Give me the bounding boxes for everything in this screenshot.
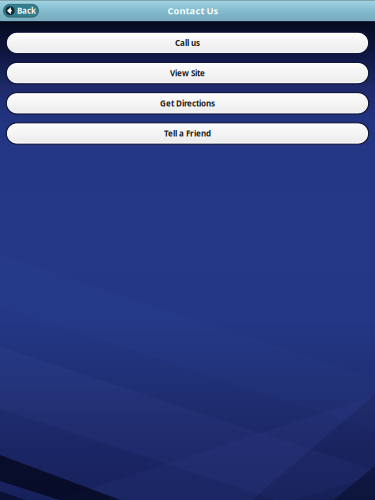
button[interactable]: View Site [6, 62, 369, 84]
staticText: View Site [170, 68, 205, 78]
button[interactable]: Tell a Friend [6, 123, 369, 144]
staticText: Back [17, 5, 36, 16]
staticText: Contact Us [167, 4, 218, 17]
staticText: Call us [175, 38, 200, 48]
staticText: Get Directions [160, 98, 215, 109]
button[interactable]: Call us [6, 32, 369, 54]
button[interactable]: Get Directions [6, 93, 369, 114]
staticText: Tell a Friend [164, 128, 211, 139]
button[interactable]: Back [3, 4, 38, 17]
